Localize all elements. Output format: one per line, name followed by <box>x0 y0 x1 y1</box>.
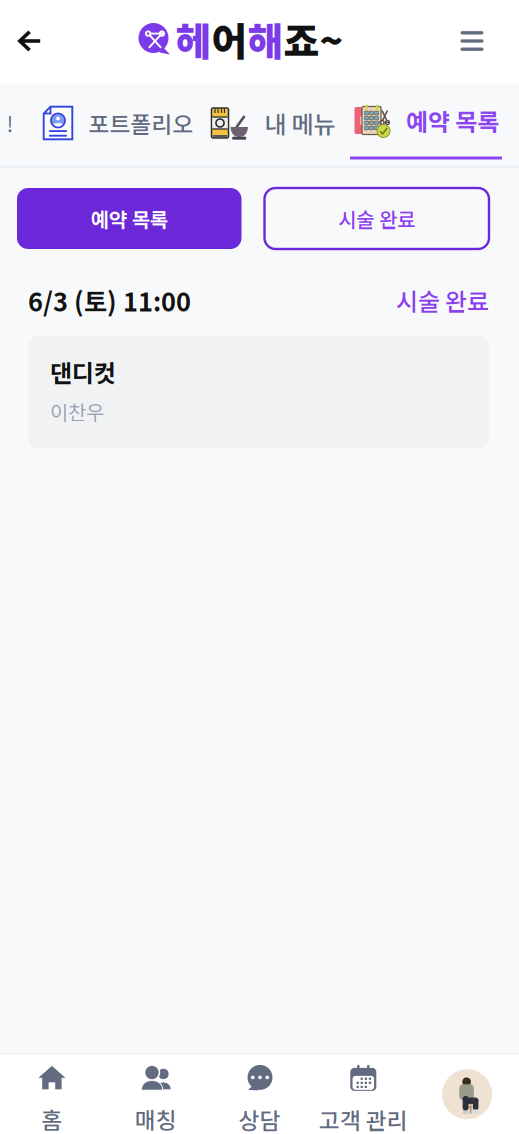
staticText: 해 <box>247 11 283 67</box>
staticText: 포트폴리오 <box>88 107 193 139</box>
button[interactable]: 매칭 <box>104 1054 208 1134</box>
button[interactable]: 시술 완료 <box>264 188 489 249</box>
staticText: 고객 관리 <box>319 1103 408 1134</box>
staticText: 헤 <box>175 11 211 67</box>
staticText: 어 <box>211 11 247 67</box>
staticText: 홈 <box>41 1102 62 1134</box>
button[interactable]: 홈 <box>0 1054 104 1134</box>
staticText: 시술 완료 <box>396 283 489 318</box>
staticText: 내 메뉴 <box>264 106 335 140</box>
staticText: 상담 <box>238 1103 280 1134</box>
staticText: 죠~ <box>283 11 343 67</box>
staticText: ! <box>6 108 13 138</box>
button[interactable]: Back <box>2 13 58 69</box>
button[interactable]: 댄디컷 <box>28 336 489 449</box>
button[interactable]: 예약 목록 <box>342 84 510 163</box>
staticText: 매칭 <box>135 1102 177 1134</box>
button[interactable]: 시술 완료 <box>396 283 489 318</box>
button[interactable]: Menu <box>444 13 500 69</box>
staticText: 댄디컷 <box>50 354 116 389</box>
button[interactable]: 내 메뉴 <box>202 84 343 162</box>
staticText: 예약 목록 <box>406 103 499 138</box>
button[interactable]: 예약 목록 <box>17 188 241 249</box>
staticText: 이찬우 <box>50 397 104 426</box>
button[interactable]: 고객 관리 <box>311 1054 415 1134</box>
button[interactable]: Profile <box>415 1054 519 1134</box>
staticText: 시술 완료 <box>338 204 415 233</box>
staticText: 6/3 (토) 11:00 <box>28 282 191 319</box>
button[interactable]: 상담 <box>208 1054 311 1134</box>
staticText: 예약 목록 <box>91 204 168 233</box>
button[interactable]: 포트폴리오 <box>34 84 201 162</box>
